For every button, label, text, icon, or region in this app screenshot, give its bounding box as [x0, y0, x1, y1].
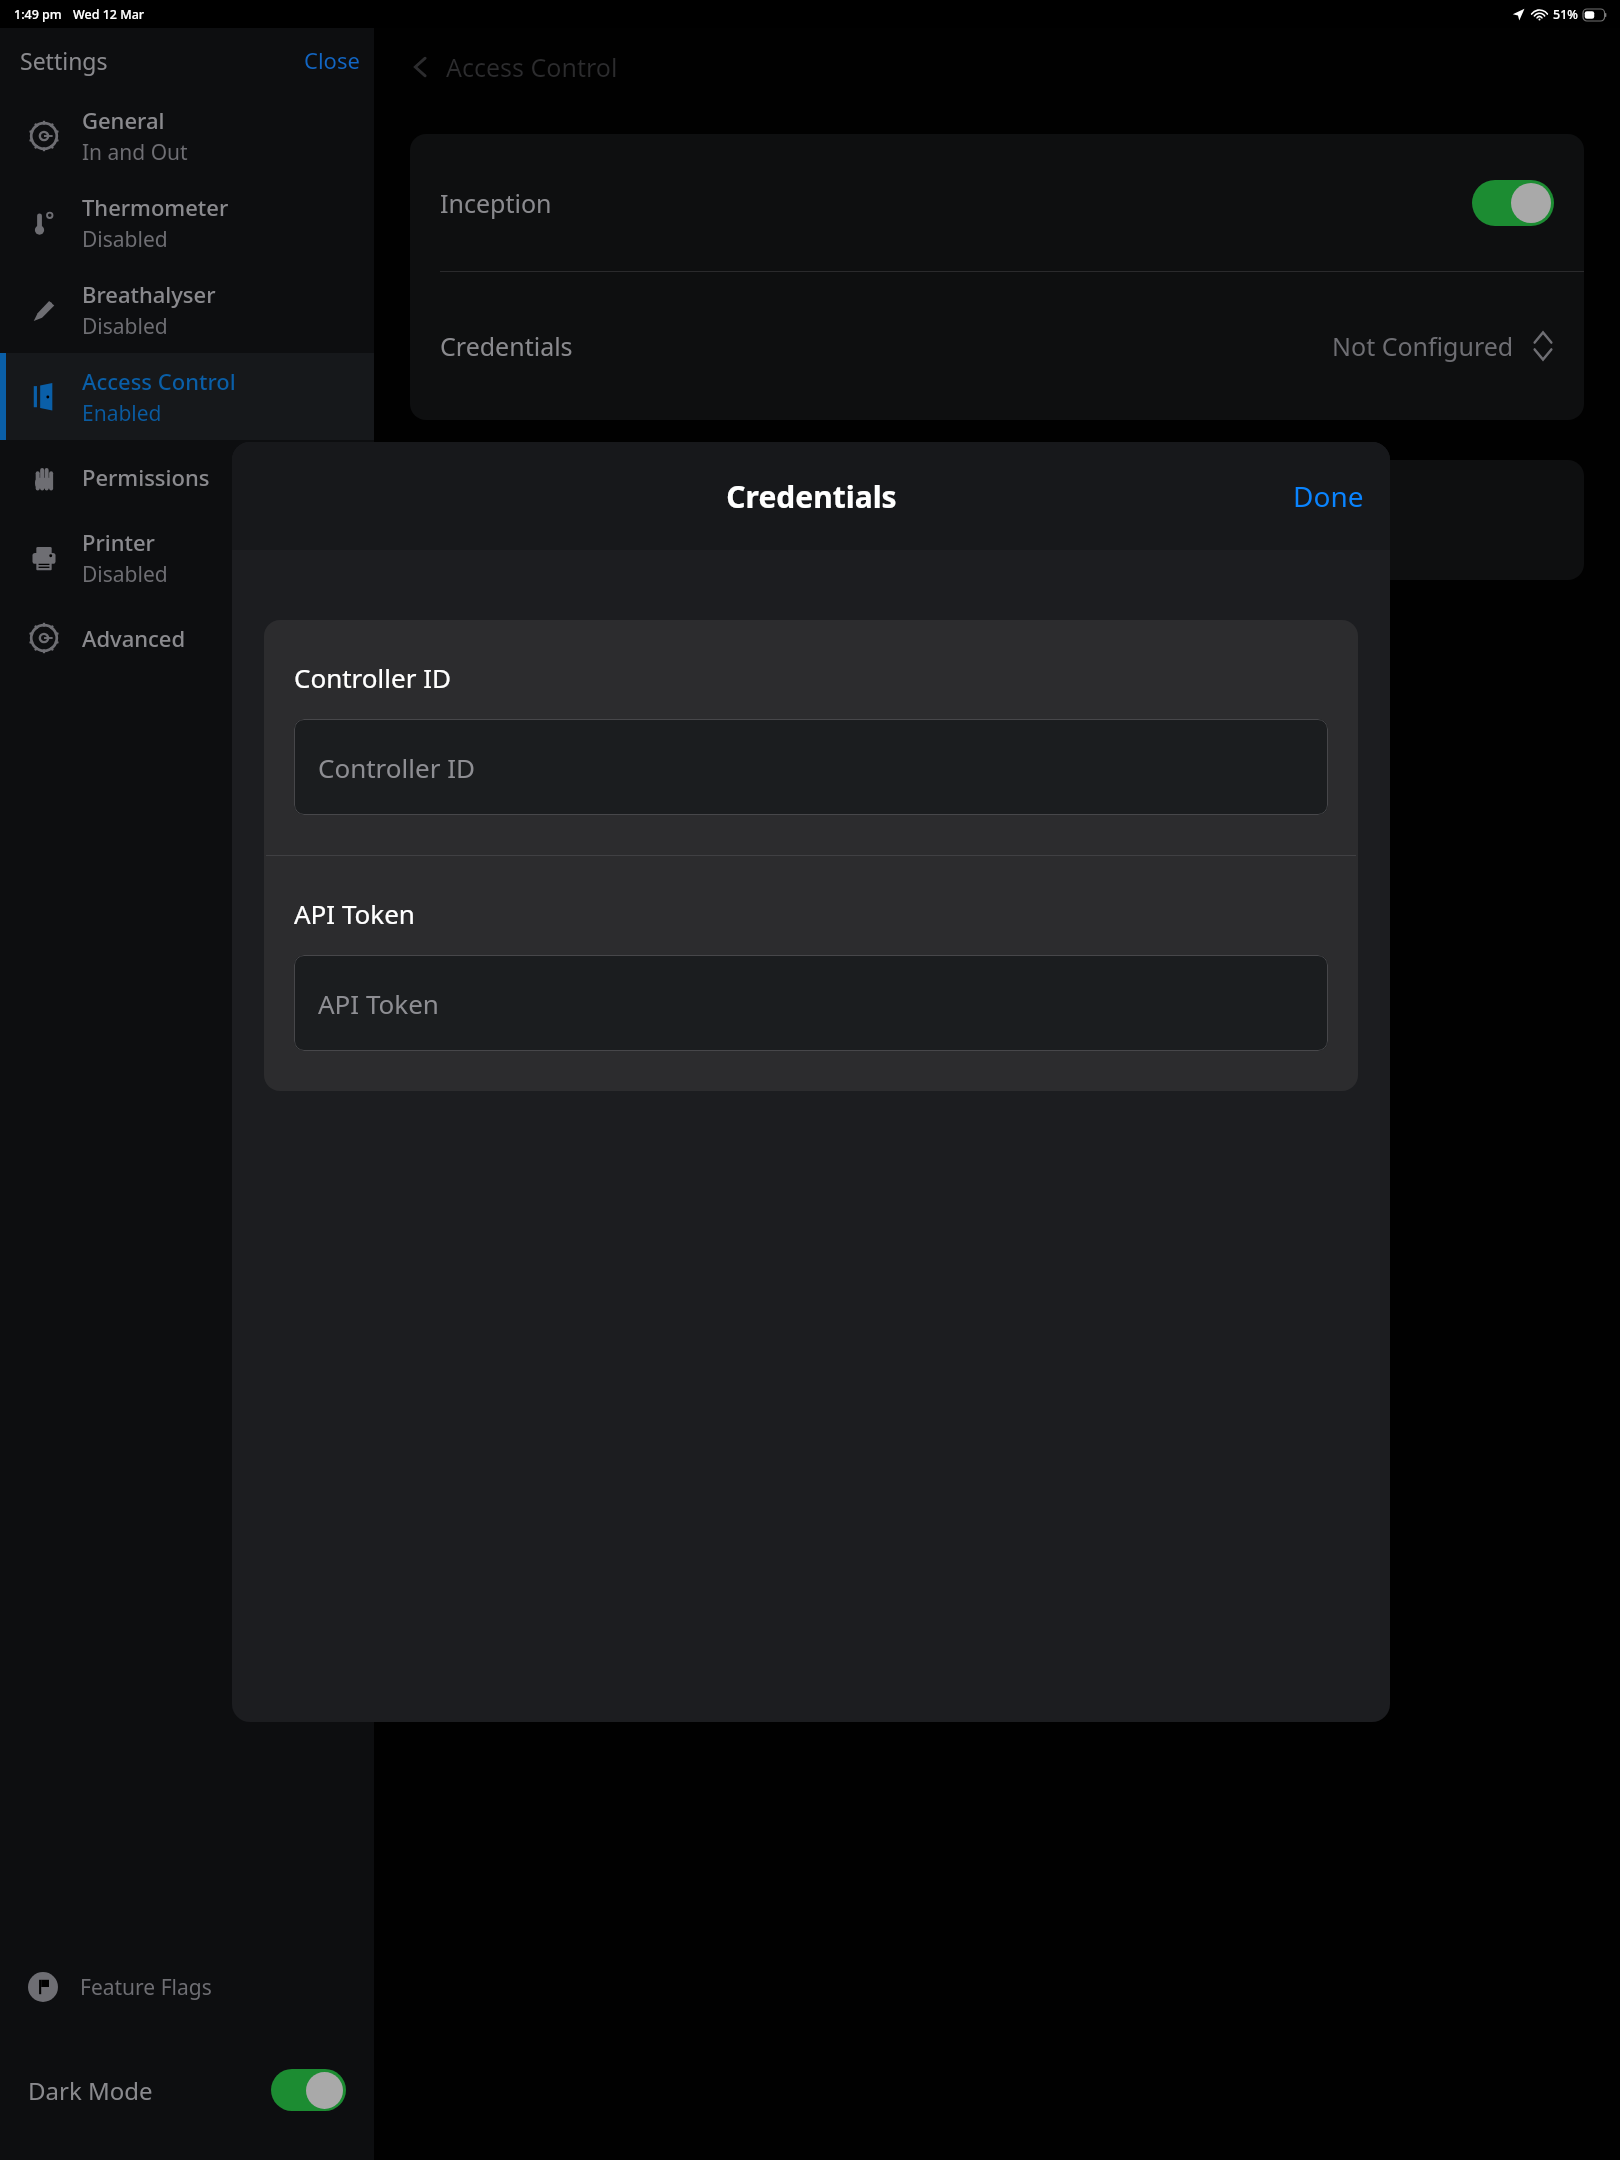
staticText: Dark Mode: [28, 2074, 153, 2107]
staticText: Credentials: [440, 329, 573, 363]
button[interactable]: Thermometer: [0, 179, 374, 266]
button[interactable]: Printer: [0, 514, 374, 601]
button[interactable]: API Token: [294, 955, 1328, 1051]
button[interactable]: Done: [1267, 465, 1390, 527]
staticText: Inception: [440, 186, 552, 220]
button[interactable]: Feature Flags: [0, 1944, 374, 2030]
button[interactable]: Dark Mode: [0, 2030, 374, 2150]
staticText: Thermometer: [82, 192, 229, 222]
staticText: Disabled: [82, 225, 168, 254]
button[interactable]: Toggle on: [271, 2069, 346, 2111]
staticText: Enabled: [82, 399, 162, 428]
button[interactable]: Breathalyser: [0, 266, 374, 353]
staticText: Feature Flags: [80, 1973, 212, 2002]
staticText: Disabled: [82, 312, 168, 341]
staticText: Not Configured: [1332, 329, 1514, 363]
staticText: In and Out: [82, 138, 188, 167]
button[interactable]: Back: [402, 42, 624, 92]
staticText: General: [82, 105, 165, 135]
staticText: Breathalyser: [82, 279, 216, 309]
staticText: API Token: [318, 986, 439, 1021]
staticText: Advanced: [82, 623, 186, 653]
staticText: Close: [304, 45, 360, 75]
staticText: Printer: [82, 527, 155, 557]
staticText: Done: [1293, 477, 1364, 515]
button[interactable]: Access Control: [0, 353, 374, 440]
button[interactable]: Inception: [410, 134, 1584, 271]
button[interactable]: Advanced: [0, 601, 374, 675]
button[interactable]: Toggle on: [1472, 180, 1554, 226]
staticText: Settings: [20, 45, 108, 76]
staticText: Credentials: [726, 476, 897, 517]
staticText: Wed 12 Mar: [73, 6, 145, 23]
staticText: Controller ID: [318, 750, 475, 785]
button[interactable]: Close: [290, 37, 374, 83]
button[interactable]: Controller ID: [294, 719, 1328, 815]
button[interactable]: Permissions: [0, 440, 374, 514]
staticText: Access Control: [446, 50, 618, 84]
staticText: API Token: [294, 896, 415, 931]
staticText: Permissions: [82, 462, 210, 492]
staticText: Access Control: [82, 366, 236, 396]
button[interactable]: Credentials: [410, 272, 1584, 420]
button[interactable]: General: [0, 92, 374, 179]
staticText: Disabled: [82, 560, 168, 589]
staticText: 1:49 pm: [14, 6, 62, 23]
staticText: Controller ID: [294, 660, 451, 695]
staticText: 51%: [1553, 6, 1578, 23]
